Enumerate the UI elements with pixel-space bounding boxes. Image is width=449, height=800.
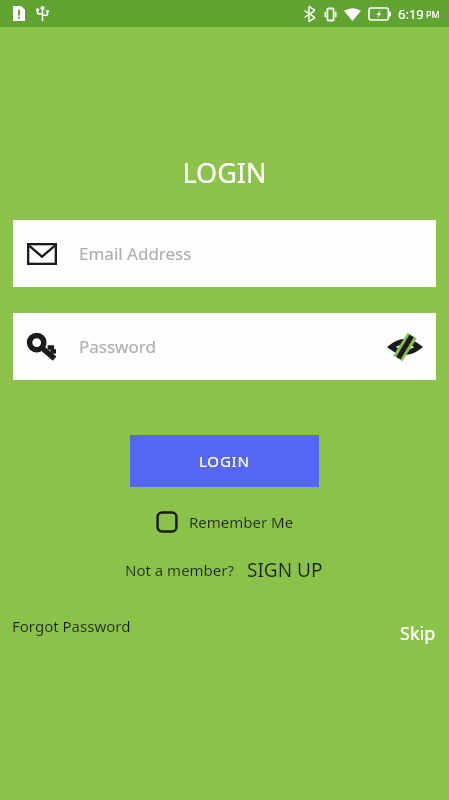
button[interactable]: Password	[13, 313, 436, 380]
button[interactable]: Skip	[398, 619, 438, 648]
button[interactable]: SIGN UP	[245, 555, 325, 585]
button[interactable]: Forgot Password	[10, 614, 133, 638]
staticText: 6:19	[398, 5, 424, 23]
staticText: Password	[79, 335, 156, 358]
button[interactable]: Show password	[388, 330, 422, 364]
staticText: Email Address	[79, 242, 192, 265]
staticText: SIGN UP	[247, 557, 323, 583]
staticText: Forgot Password	[12, 616, 131, 636]
staticText: PM	[426, 8, 440, 20]
staticText: Remember Me	[189, 512, 294, 532]
button[interactable]: Remember Me	[154, 509, 296, 535]
staticText: LOGIN	[0, 154, 449, 191]
other: Password	[28, 334, 56, 360]
button[interactable]: Email	[13, 220, 436, 287]
other: Email	[27, 243, 57, 265]
staticText: Skip	[400, 621, 436, 646]
button[interactable]: LOGIN	[130, 435, 319, 487]
staticText: LOGIN	[199, 451, 250, 471]
staticText: Not a member?	[125, 560, 235, 580]
